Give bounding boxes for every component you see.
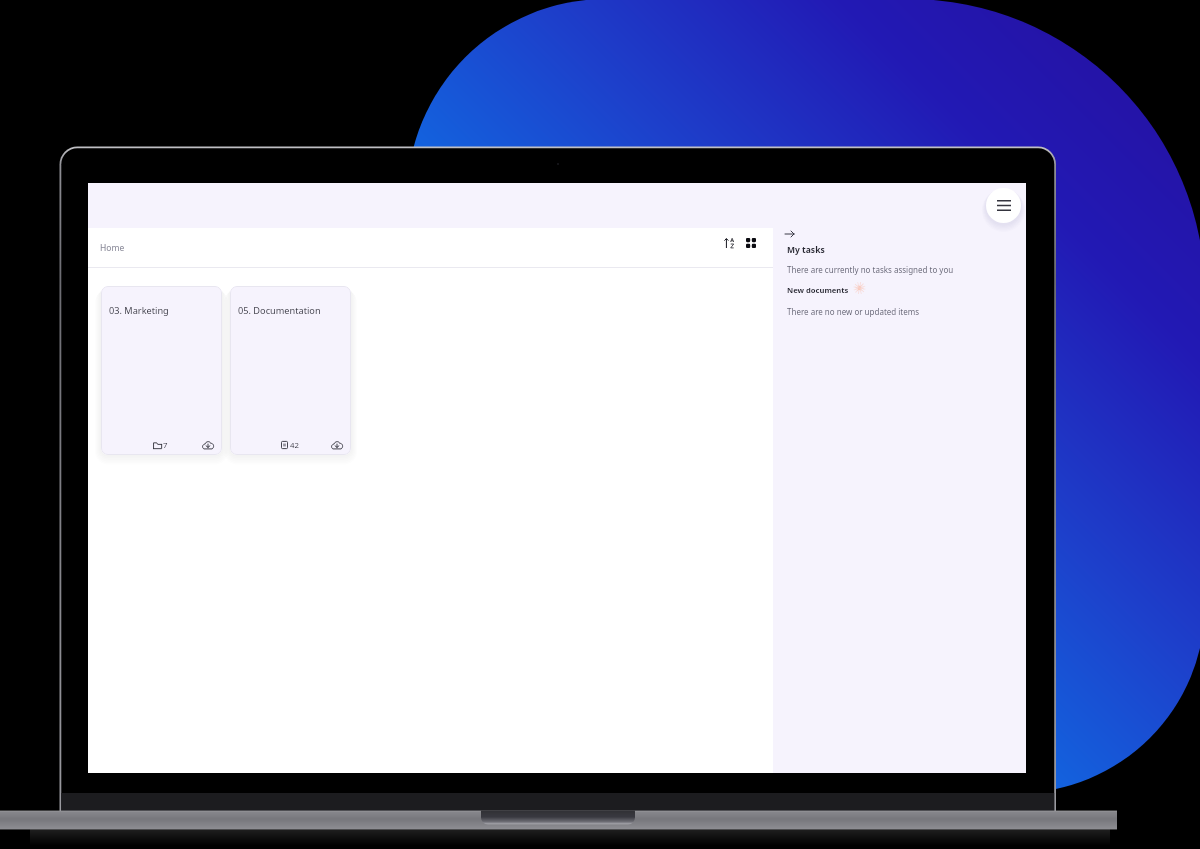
staticText: 05. Documentation <box>238 304 321 317</box>
staticText: 03. Marketing <box>109 304 169 317</box>
staticText: Home <box>100 242 125 254</box>
staticText: 7 <box>163 440 168 451</box>
button[interactable]: Grid view <box>741 233 761 253</box>
staticText: My tasks <box>787 244 825 256</box>
staticText: There are currently no tasks assigned to… <box>787 264 954 275</box>
button[interactable]: 03. Marketing <box>101 286 222 455</box>
staticText: 42 <box>290 440 299 451</box>
button[interactable]: Open <box>785 227 801 241</box>
staticText: New documents <box>787 285 849 295</box>
button[interactable]: Sort A to Z <box>719 233 739 253</box>
staticText: There are no new or updated items <box>787 306 920 317</box>
button[interactable]: Home <box>100 242 125 254</box>
button[interactable]: 05. Documentation <box>230 286 351 455</box>
button[interactable]: Menu <box>986 188 1021 223</box>
